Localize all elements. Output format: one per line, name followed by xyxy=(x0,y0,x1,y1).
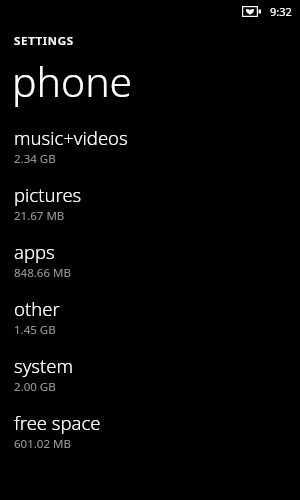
button[interactable]: apps xyxy=(0,239,300,296)
staticText: pictures xyxy=(14,182,82,207)
button[interactable]: free space xyxy=(0,410,300,467)
staticText: 848.66 MB xyxy=(14,265,71,281)
staticText: 1.45 GB xyxy=(14,322,56,338)
staticText: 2.34 GB xyxy=(14,151,56,167)
staticText: 9:32 xyxy=(270,4,292,19)
button[interactable]: system xyxy=(0,353,300,410)
staticText: 21.67 MB xyxy=(14,208,65,224)
staticText: 601.02 MB xyxy=(14,436,71,452)
staticText: other xyxy=(14,296,60,321)
staticText: apps xyxy=(14,239,55,264)
staticText: SETTINGS xyxy=(14,33,74,49)
staticText: phone xyxy=(12,53,133,109)
button[interactable]: pictures xyxy=(0,182,300,239)
button[interactable]: other xyxy=(0,296,300,353)
staticText: system xyxy=(14,353,74,378)
staticText: music+videos xyxy=(14,125,128,150)
staticText: 2.00 GB xyxy=(14,379,56,395)
other: Battery saver xyxy=(242,6,261,17)
staticText: free space xyxy=(14,410,101,435)
button[interactable]: music+videos xyxy=(0,125,300,182)
